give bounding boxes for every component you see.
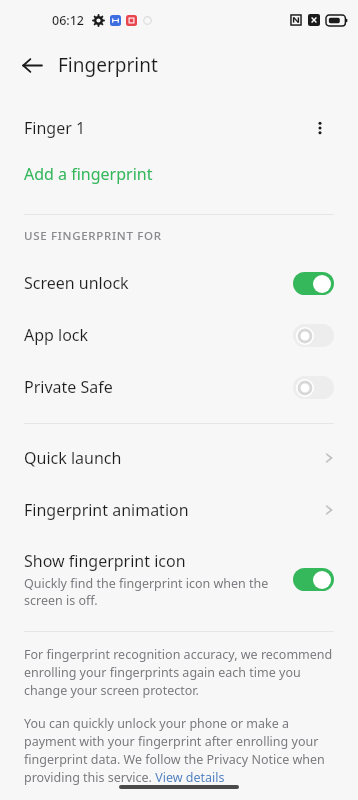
button[interactable] [293, 324, 334, 347]
button[interactable]: Private Safe [0, 361, 358, 413]
staticText: For fingerprint recognition accuracy, we… [24, 646, 334, 699]
button[interactable]: More options [306, 114, 334, 142]
button[interactable]: Back [12, 45, 52, 85]
button[interactable]: Quick launch [0, 432, 358, 484]
staticText: Finger 1 [24, 117, 306, 139]
staticText: Quick launch [24, 447, 322, 469]
staticText: Add a fingerprint [24, 163, 153, 185]
staticText: Fingerprint animation [24, 499, 322, 521]
button[interactable]: Screen unlock [0, 257, 358, 309]
button[interactable] [293, 272, 334, 295]
staticText: Fingerprint [58, 52, 158, 78]
staticText: 06:12 [52, 12, 85, 29]
staticText: USE FINGERPRINT FOR [24, 228, 162, 244]
button[interactable]: Show fingerprint icon [0, 542, 358, 619]
button[interactable] [293, 376, 334, 399]
staticText: You can quickly unlock your phone or mak… [24, 715, 334, 786]
staticText: Screen unlock [24, 272, 293, 294]
button[interactable] [293, 568, 334, 591]
staticText: Quickly find the fingerprint icon when t… [24, 575, 281, 609]
button[interactable]: App lock [0, 309, 358, 361]
button[interactable]: Finger 1 [0, 104, 358, 152]
button[interactable]: Fingerprint animation [0, 484, 358, 536]
staticText: Private Safe [24, 376, 293, 398]
button[interactable]: Add a fingerprint [0, 152, 358, 196]
staticText: Show fingerprint icon [24, 550, 186, 572]
staticText: App lock [24, 324, 293, 346]
